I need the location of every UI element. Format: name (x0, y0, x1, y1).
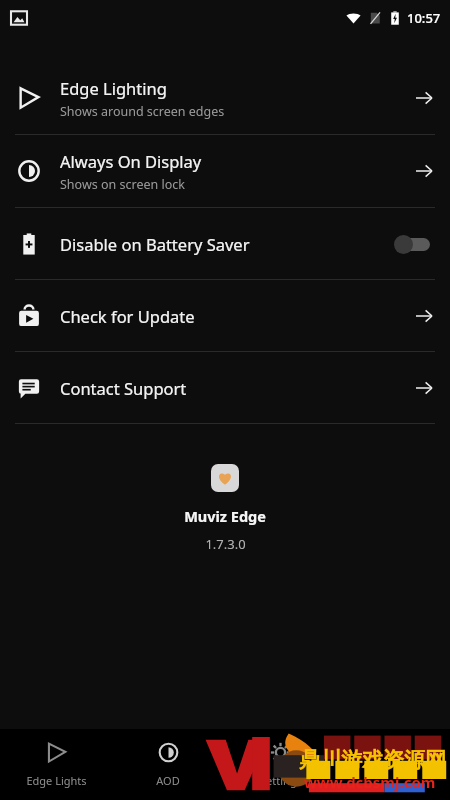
button[interactable]: Edge Lights (0, 734, 112, 796)
staticText: 10:57 (407, 9, 441, 27)
staticText: Muviz Edge (184, 506, 266, 526)
staticText: www.dcbsmj.com (304, 772, 436, 792)
staticText: Check for Update (60, 305, 195, 327)
staticText: AOD (156, 773, 180, 788)
staticText: Settings (260, 773, 302, 788)
staticText: Always On Display (60, 150, 202, 172)
staticText: Edge Lights (26, 773, 87, 788)
staticText: Shows on screen lock (60, 176, 185, 193)
button[interactable]: Contact Support (0, 352, 450, 423)
button[interactable]: Edge Lighting (0, 62, 450, 134)
staticText: Edge Lighting (60, 77, 167, 99)
button[interactable]: AOD (112, 734, 224, 796)
staticText: Disable on Battery Saver (60, 233, 250, 255)
button[interactable]: Disable on Battery Saver toggle (394, 232, 434, 256)
staticText: Shows around screen edges (60, 103, 225, 120)
button[interactable]: Disable on Battery Saver (0, 208, 450, 279)
staticText: 鼎川游戏资源网 (299, 747, 446, 773)
staticText: Contact Support (60, 377, 187, 399)
staticText: 1.7.3.0 (205, 535, 246, 553)
button[interactable]: Check for Update (0, 280, 450, 351)
button[interactable]: Settings (224, 734, 337, 796)
button[interactable]: Always On Display (0, 135, 450, 207)
